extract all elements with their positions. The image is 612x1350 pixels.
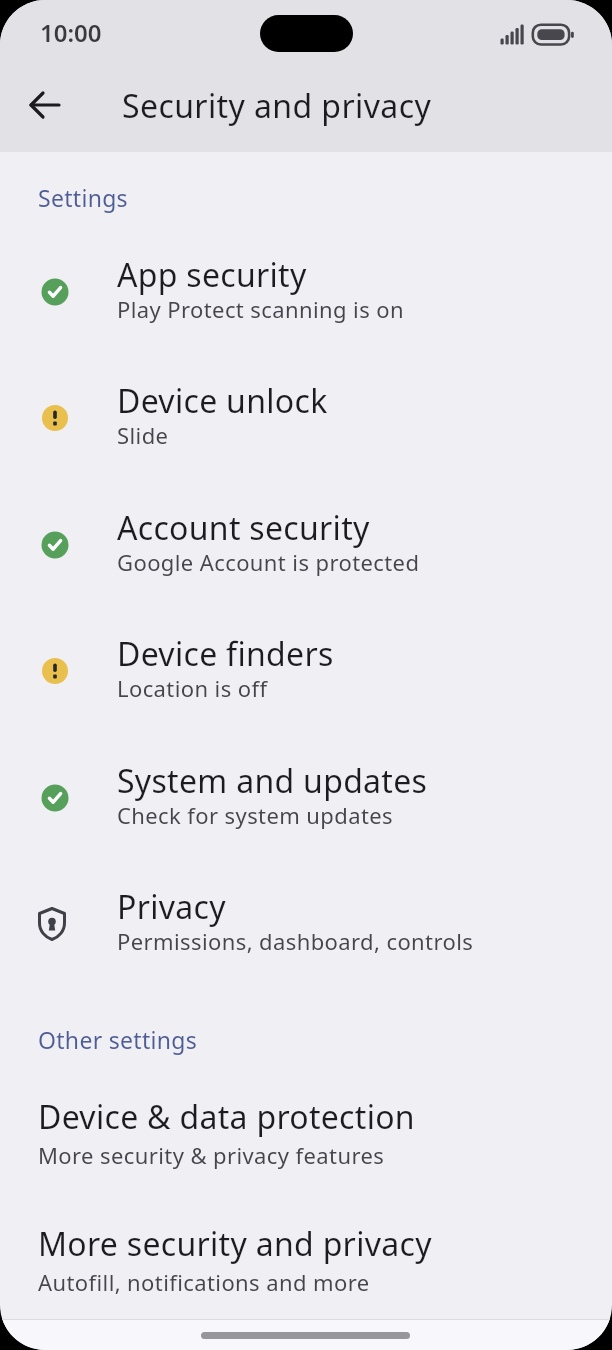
staticText: Security and privacy [122, 84, 432, 128]
button[interactable]: Device unlock [0, 340, 612, 466]
staticText: Play Protect scanning is on [117, 294, 404, 324]
staticText: Other settings [38, 1024, 198, 1055]
staticText: Account security [117, 506, 370, 550]
staticText: More security & privacy features [38, 1140, 385, 1170]
button[interactable]: App security [0, 214, 612, 340]
staticText: App security [117, 253, 307, 297]
staticText: Autofill, notifications and more [38, 1267, 370, 1297]
staticText: Settings [38, 182, 128, 213]
staticText: Device finders [117, 632, 334, 676]
staticText: Device unlock [117, 379, 328, 423]
button[interactable]: Privacy [0, 846, 612, 972]
staticText: More security and privacy [38, 1222, 432, 1266]
staticText: Google Account is protected [117, 547, 420, 577]
button[interactable]: Account security [0, 467, 612, 593]
button[interactable]: System and updates [0, 720, 612, 846]
button[interactable]: Device & data protection [0, 1056, 612, 1182]
button[interactable]: More security and privacy [0, 1183, 612, 1309]
staticText: Device & data protection [38, 1095, 415, 1139]
staticText: Permissions, dashboard, controls [117, 926, 474, 956]
staticText: Privacy [117, 885, 226, 929]
staticText: Check for system updates [117, 800, 394, 830]
staticText: Slide [117, 420, 169, 450]
button[interactable]: Device finders [0, 593, 612, 719]
staticText: Location is off [117, 673, 268, 703]
button[interactable] [21, 81, 69, 129]
staticText: 10:00 [40, 16, 102, 49]
staticText: System and updates [117, 759, 428, 803]
